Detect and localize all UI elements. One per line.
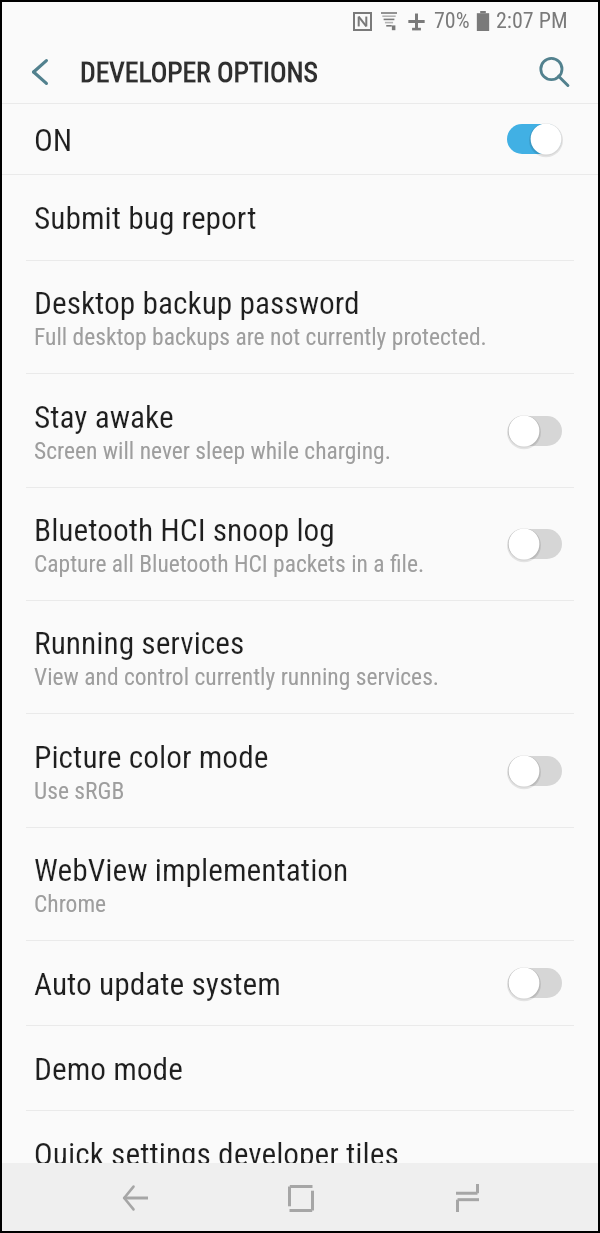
staticText: Submit bug report xyxy=(34,200,257,237)
staticText: Stay awake xyxy=(34,399,174,436)
staticText: DEVELOPER OPTIONS xyxy=(80,56,318,88)
button[interactable]: Recent apps xyxy=(369,1163,565,1231)
button[interactable]: WebView implementation xyxy=(2,828,598,940)
staticText: Auto update system xyxy=(34,966,281,1003)
staticText: 70% xyxy=(434,8,470,34)
staticText: Running services xyxy=(34,625,245,662)
staticText: 2:07 PM xyxy=(496,8,568,34)
button[interactable]: Home xyxy=(233,1163,369,1231)
staticText: Bluetooth HCI snoop log xyxy=(34,512,335,549)
button[interactable]: Navigate up xyxy=(2,40,78,103)
button[interactable]: Demo mode xyxy=(2,1026,598,1110)
staticText: Screen will never sleep while charging. xyxy=(34,437,391,465)
button[interactable]: Picture color mode xyxy=(2,714,598,827)
staticText: Quick settings developer tiles xyxy=(34,1136,399,1173)
staticText: Full desktop backups are not currently p… xyxy=(34,323,487,351)
button[interactable]: Submit bug report xyxy=(2,175,598,260)
staticText: Chrome xyxy=(34,890,107,918)
staticText: Capture all Bluetooth HCI packets in a f… xyxy=(34,550,425,578)
staticText: View and control currently running servi… xyxy=(34,663,440,691)
button[interactable]: Desktop backup password xyxy=(2,261,598,373)
button[interactable]: Back xyxy=(37,1163,233,1231)
button[interactable]: Bluetooth HCI snoop log xyxy=(2,488,598,600)
staticText: Demo mode xyxy=(34,1051,183,1088)
button[interactable]: Running services xyxy=(2,601,598,713)
button[interactable]: Search xyxy=(512,40,598,103)
staticText: Picture color mode xyxy=(34,739,269,776)
button[interactable]: Auto update system xyxy=(2,941,598,1025)
button[interactable]: Stay awake xyxy=(2,374,598,487)
button[interactable]: Quick settings developer tiles xyxy=(2,1111,598,1195)
staticText: ON xyxy=(34,122,73,159)
staticText: Desktop backup password xyxy=(34,285,360,322)
button[interactable]: ON xyxy=(2,104,598,174)
staticText: Use sRGB xyxy=(34,777,125,805)
staticText: WebView implementation xyxy=(34,852,349,889)
